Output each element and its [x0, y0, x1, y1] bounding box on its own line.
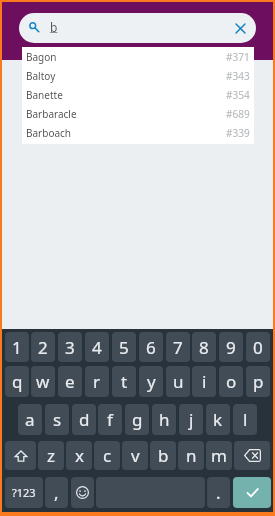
button[interactable]: Bagon: [22, 47, 254, 66]
button[interactable]: ?123: [5, 477, 43, 508]
button[interactable]: k: [206, 404, 230, 435]
staticText: w: [36, 370, 50, 393]
button[interactable]: d: [72, 404, 96, 435]
button[interactable]: j: [179, 404, 203, 435]
staticText: Barbaracle: [26, 107, 77, 121]
button[interactable]: 4: [85, 332, 109, 362]
staticText: z: [47, 444, 55, 467]
button[interactable]: 9: [219, 332, 243, 362]
staticText: a: [25, 408, 35, 431]
staticText: b: [50, 19, 58, 35]
button[interactable]: Emoji: [71, 477, 94, 508]
staticText: 5: [119, 336, 129, 359]
staticText: ,: [54, 481, 59, 504]
staticText: r: [93, 370, 101, 393]
staticText: 8: [199, 336, 209, 359]
button[interactable]: 1: [5, 332, 29, 362]
button[interactable]: n: [178, 441, 204, 470]
button[interactable]: s: [45, 404, 69, 435]
button[interactable]: u: [166, 366, 190, 397]
button[interactable]: Baltoy: [22, 66, 254, 85]
button[interactable]: q: [5, 366, 29, 397]
staticText: o: [226, 370, 237, 393]
staticText: v: [131, 444, 140, 467]
staticText: h: [159, 408, 170, 431]
button[interactable]: ,: [45, 477, 68, 508]
staticText: p: [253, 370, 264, 393]
staticText: b: [158, 444, 169, 467]
button[interactable]: Barboach: [22, 123, 254, 142]
staticText: #354: [226, 88, 250, 102]
staticText: e: [65, 370, 75, 393]
staticText: i: [202, 370, 207, 393]
staticText: 0: [253, 336, 263, 359]
staticText: u: [173, 370, 184, 393]
button[interactable]: 2: [31, 332, 55, 362]
staticText: Banette: [26, 88, 63, 102]
button[interactable]: Banette: [22, 85, 254, 104]
button[interactable]: a: [18, 404, 42, 435]
staticText: f: [107, 408, 113, 431]
button[interactable]: c: [94, 441, 120, 470]
button[interactable]: Enter: [233, 477, 271, 508]
button[interactable]: 5: [112, 332, 136, 362]
staticText: c: [103, 444, 112, 467]
button[interactable]: Shift: [5, 441, 36, 470]
button[interactable]: 8: [192, 332, 216, 362]
button[interactable]: x: [66, 441, 92, 470]
button[interactable]: b: [19, 13, 256, 43]
button[interactable]: 6: [139, 332, 163, 362]
button[interactable]: e: [58, 366, 82, 397]
button[interactable]: f: [98, 404, 122, 435]
button[interactable]: l: [233, 404, 257, 435]
staticText: 1: [12, 336, 22, 359]
staticText: s: [53, 408, 62, 431]
staticText: y: [147, 370, 156, 393]
staticText: 9: [226, 336, 236, 359]
button[interactable]: w: [31, 366, 55, 397]
staticText: t: [121, 370, 128, 393]
staticText: 2: [38, 336, 48, 359]
button[interactable]: 0: [246, 332, 270, 362]
button[interactable]: y: [139, 366, 163, 397]
staticText: Barboach: [26, 126, 72, 140]
button[interactable]: p: [246, 366, 270, 397]
button[interactable]: Barbaracle: [22, 104, 254, 123]
staticText: k: [213, 408, 223, 431]
staticText: #371: [226, 50, 250, 64]
staticText: Baltoy: [26, 69, 56, 83]
staticText: .: [216, 481, 221, 504]
staticText: g: [132, 408, 143, 431]
button[interactable]: 3: [58, 332, 82, 362]
staticText: l: [243, 408, 248, 431]
staticText: #339: [226, 126, 250, 140]
button[interactable]: .: [207, 477, 230, 508]
staticText: 7: [173, 336, 183, 359]
staticText: x: [75, 444, 84, 467]
staticText: d: [79, 408, 90, 431]
staticText: j: [189, 408, 194, 431]
button[interactable]: m: [206, 441, 232, 470]
staticText: Bagon: [26, 50, 57, 64]
button[interactable]: z: [38, 441, 64, 470]
staticText: q: [12, 370, 23, 393]
staticText: #689: [226, 107, 250, 121]
button[interactable]: i: [192, 366, 216, 397]
button[interactable]: Backspace: [234, 441, 270, 470]
button[interactable]: 7: [166, 332, 190, 362]
button[interactable]: b: [150, 441, 176, 470]
staticText: n: [186, 444, 197, 467]
button[interactable]: v: [122, 441, 148, 470]
staticText: 3: [65, 336, 75, 359]
staticText: 4: [92, 336, 102, 359]
button[interactable]: t: [112, 366, 136, 397]
button[interactable]: Clear search: [231, 19, 249, 37]
button[interactable]: g: [125, 404, 149, 435]
staticText: ?123: [12, 485, 36, 500]
button[interactable]: r: [85, 366, 109, 397]
staticText: 6: [146, 336, 156, 359]
staticText: #343: [226, 69, 250, 83]
button[interactable]: h: [152, 404, 176, 435]
button[interactable]: o: [219, 366, 243, 397]
